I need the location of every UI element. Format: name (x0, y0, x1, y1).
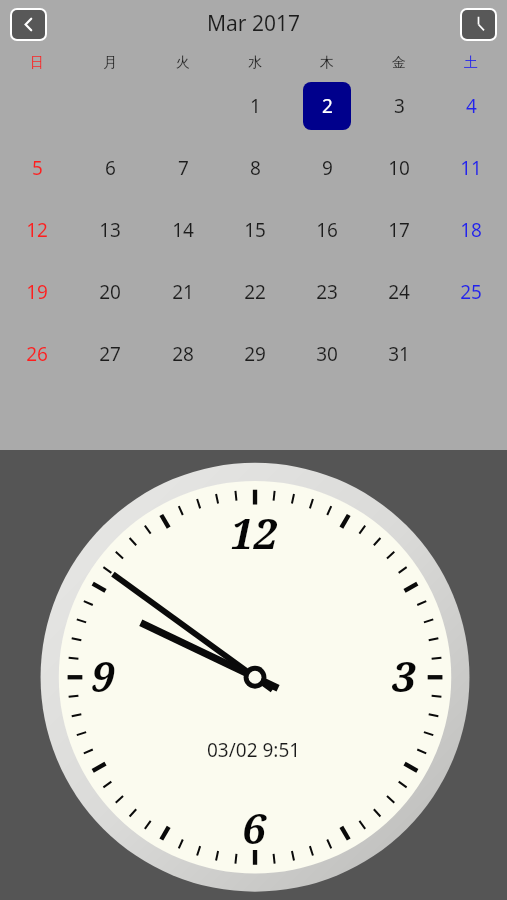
button[interactable]: 9 (303, 144, 351, 192)
button[interactable]: 20 (86, 268, 134, 316)
button[interactable]: 6 (86, 144, 134, 192)
button[interactable]: 13 (86, 206, 134, 254)
button[interactable]: 10 (375, 144, 423, 192)
staticText: 6 (242, 799, 266, 856)
staticText: 27 (99, 341, 121, 367)
button[interactable]: 24 (375, 268, 423, 316)
button[interactable]: Clock (462, 10, 495, 39)
staticText: 3 (392, 647, 416, 704)
staticText: 26 (26, 341, 48, 367)
staticText: 1 (250, 93, 261, 119)
staticText: 15 (244, 217, 266, 243)
button[interactable]: 8 (231, 144, 279, 192)
button[interactable]: 4 (447, 82, 495, 130)
button[interactable]: 31 (375, 330, 423, 378)
button[interactable]: 28 (159, 330, 207, 378)
button[interactable]: 23 (303, 268, 351, 316)
staticText: 6 (105, 155, 116, 181)
button[interactable]: 18 (447, 206, 495, 254)
staticText: 5 (32, 155, 43, 181)
button[interactable]: 5 (13, 144, 61, 192)
button[interactable]: 29 (231, 330, 279, 378)
staticText: 03/02 9:51 (207, 737, 301, 763)
button[interactable]: 30 (303, 330, 351, 378)
button[interactable]: 7 (159, 144, 207, 192)
button[interactable]: 22 (231, 268, 279, 316)
staticText: 10 (388, 155, 410, 181)
staticText: 16 (316, 217, 338, 243)
staticText: 11 (460, 155, 482, 181)
staticText: 9 (322, 155, 333, 181)
button[interactable]: 16 (303, 206, 351, 254)
button[interactable]: 26 (13, 330, 61, 378)
staticText: 24 (388, 279, 410, 305)
button[interactable]: 1 (231, 82, 279, 130)
button[interactable]: 14 (159, 206, 207, 254)
staticText: 25 (460, 279, 482, 305)
button[interactable]: 11 (447, 144, 495, 192)
staticText: 21 (172, 279, 194, 305)
staticText: 22 (244, 279, 266, 305)
button[interactable]: 25 (447, 268, 495, 316)
button[interactable]: 27 (86, 330, 134, 378)
staticText: 18 (460, 217, 482, 243)
staticText: 30 (316, 341, 338, 367)
button[interactable]: Back (12, 10, 45, 39)
staticText: 28 (172, 341, 194, 367)
staticText: 12 (26, 217, 48, 243)
staticText: 12 (230, 504, 277, 561)
button[interactable]: 19 (13, 268, 61, 316)
button[interactable]: 3 (375, 82, 423, 130)
button[interactable]: 12 (13, 206, 61, 254)
button[interactable]: 2 (303, 82, 351, 130)
staticText: Mar 2017 (207, 9, 301, 38)
staticText: 2 (322, 93, 333, 119)
button[interactable]: 12 (0, 450, 507, 900)
staticText: 7 (178, 155, 189, 181)
staticText: 9 (91, 647, 115, 704)
staticText: 14 (172, 217, 194, 243)
staticText: 金 (392, 54, 406, 72)
staticText: 17 (388, 217, 410, 243)
button[interactable]: 15 (231, 206, 279, 254)
staticText: 20 (99, 279, 121, 305)
staticText: 3 (394, 93, 405, 119)
staticText: 4 (466, 93, 477, 119)
staticText: 木 (320, 54, 334, 72)
staticText: 火 (176, 54, 190, 72)
staticText: 月 (103, 54, 117, 72)
staticText: 23 (316, 279, 338, 305)
staticText: 8 (250, 155, 261, 181)
staticText: 土 (464, 54, 478, 72)
button[interactable]: 21 (159, 268, 207, 316)
button[interactable]: 17 (375, 206, 423, 254)
staticText: 31 (388, 341, 410, 367)
staticText: 13 (99, 217, 121, 243)
staticText: 29 (244, 341, 266, 367)
staticText: 19 (26, 279, 48, 305)
staticText: 日 (30, 54, 44, 72)
staticText: 水 (248, 54, 262, 72)
